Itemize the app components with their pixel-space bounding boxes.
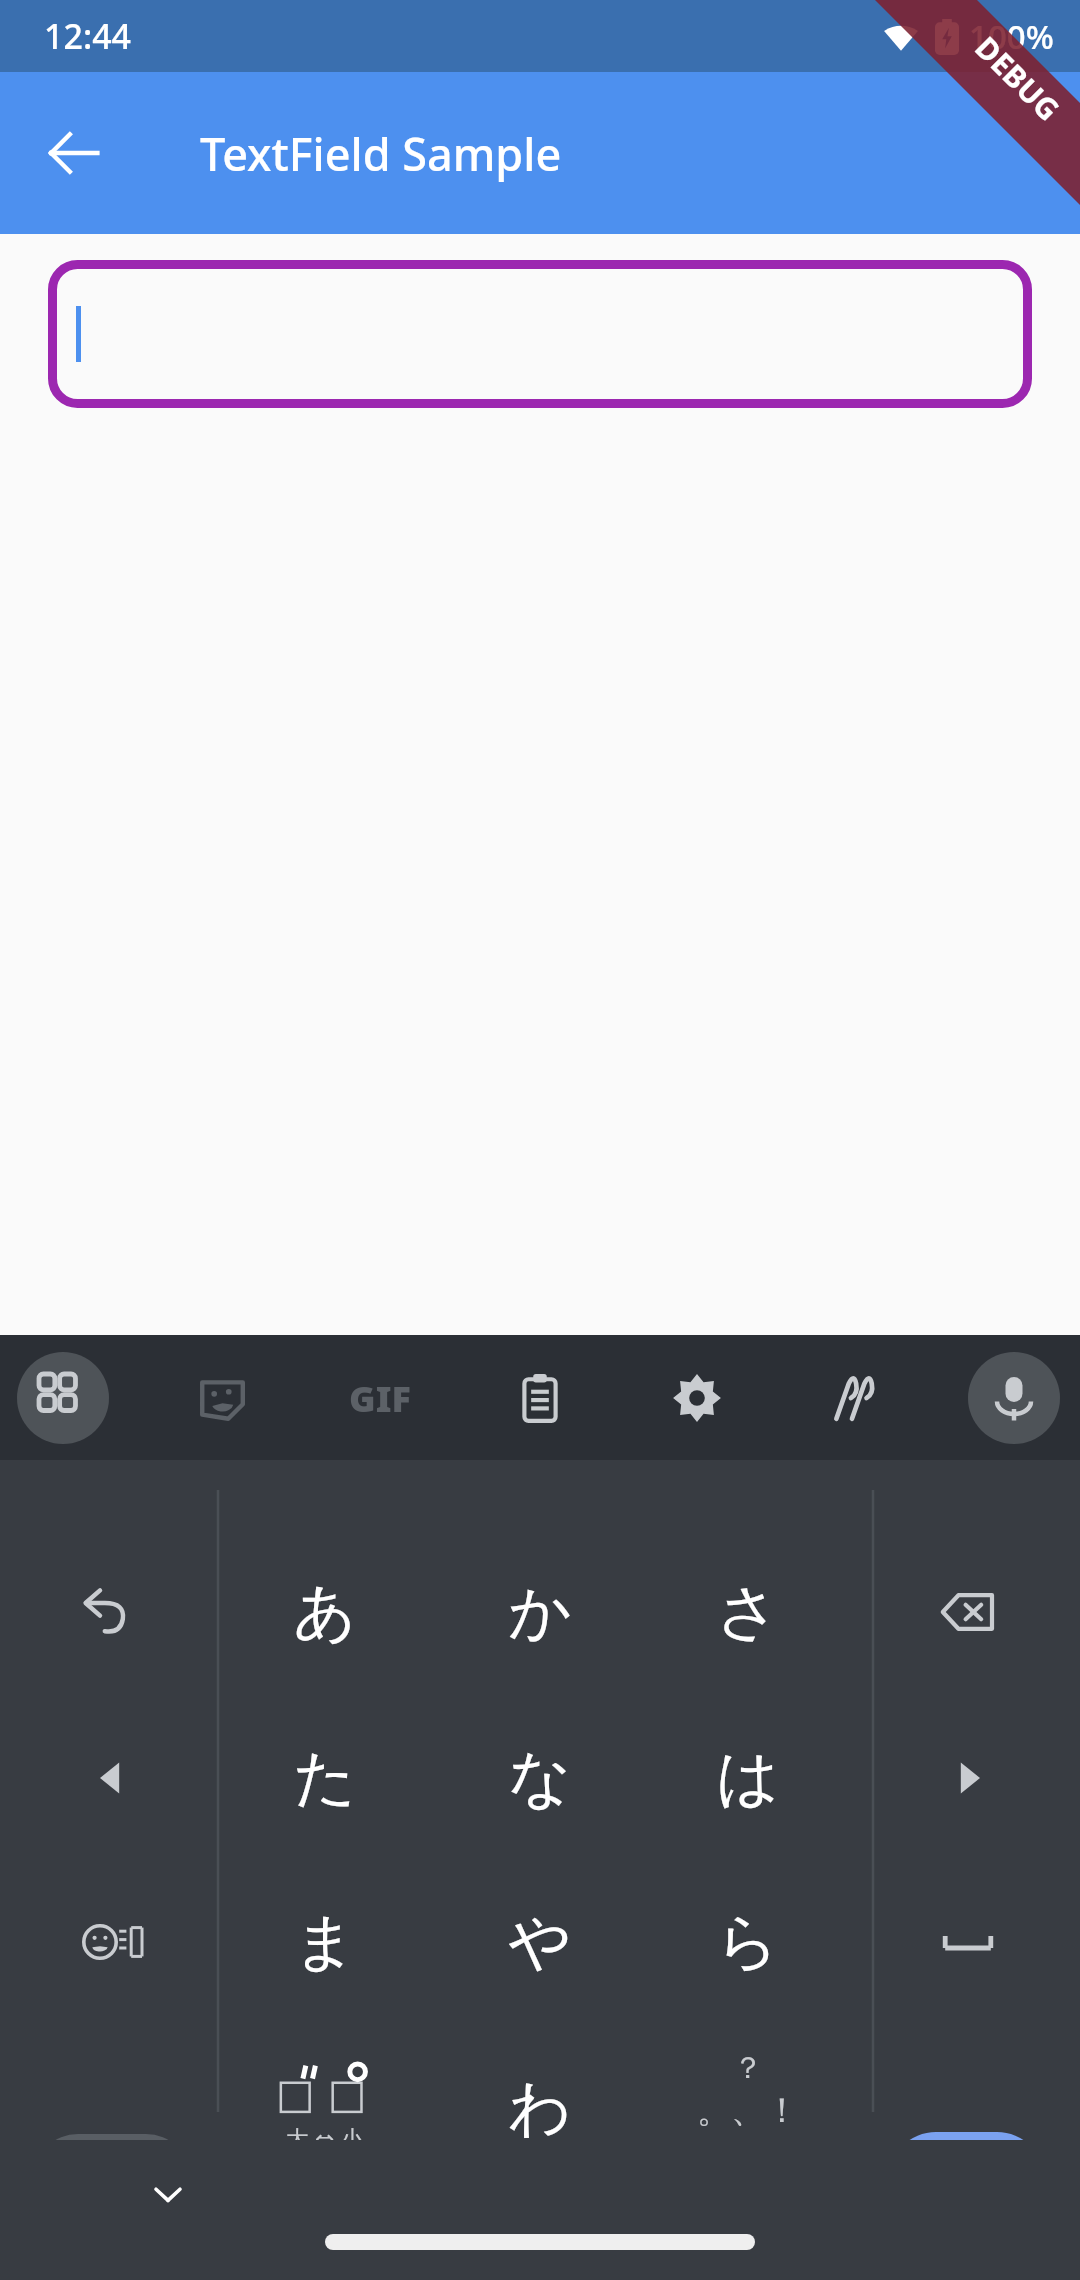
button[interactable]: Cursor right bbox=[883, 1698, 1053, 1858]
button[interactable]: か bbox=[450, 1532, 630, 1692]
button[interactable]: は bbox=[658, 1698, 838, 1858]
button[interactable]: あ bbox=[235, 1532, 415, 1692]
button[interactable]: Small kana / dakuten bbox=[235, 2028, 415, 2188]
button[interactable]: Symbols bbox=[27, 1862, 197, 2022]
staticText: ま bbox=[293, 1903, 357, 1981]
button[interactable]: な bbox=[450, 1698, 630, 1858]
staticText: ？ bbox=[733, 2049, 763, 2087]
button[interactable]: ら bbox=[658, 1862, 838, 2022]
staticText: a1 bbox=[110, 2148, 160, 2208]
button[interactable]: Backspace bbox=[883, 1532, 1053, 1692]
staticText: た bbox=[293, 1739, 357, 1817]
button[interactable]: Stickers bbox=[176, 1352, 268, 1444]
button[interactable]: GIF bbox=[334, 1352, 426, 1444]
button[interactable]: さ bbox=[658, 1532, 838, 1692]
button[interactable]: わ bbox=[450, 2028, 630, 2188]
staticText: さ bbox=[716, 1573, 780, 1651]
staticText: GIF bbox=[349, 1374, 411, 1423]
button[interactable]: あ bbox=[34, 2134, 190, 2222]
button[interactable]: Enter bbox=[888, 2132, 1045, 2231]
staticText: 100% bbox=[969, 14, 1054, 59]
staticText: か bbox=[508, 1573, 572, 1651]
button[interactable]: Undo bbox=[27, 1532, 197, 1692]
button[interactable]: Handwriting bbox=[807, 1352, 899, 1444]
staticText: 12:44 bbox=[44, 13, 132, 59]
button[interactable]: Clipboard bbox=[494, 1352, 586, 1444]
staticText: ら bbox=[716, 1903, 780, 1981]
staticText: わ bbox=[508, 2069, 572, 2147]
staticText: DEBUG bbox=[967, 27, 1069, 130]
button[interactable] bbox=[48, 260, 1032, 408]
staticText: TextField Sample bbox=[200, 123, 562, 184]
button[interactable]: Punctuation bbox=[658, 2028, 838, 2188]
staticText: 大 ⇔ 小 bbox=[286, 2122, 364, 2153]
button[interactable]: Hide keyboard bbox=[130, 2156, 206, 2232]
button[interactable]: Voice input bbox=[968, 1352, 1060, 1444]
staticText: 。、！ bbox=[697, 2089, 799, 2132]
button[interactable]: た bbox=[235, 1698, 415, 1858]
button[interactable]: Settings bbox=[651, 1352, 743, 1444]
staticText: は bbox=[716, 1739, 780, 1817]
staticText: な bbox=[508, 1739, 572, 1817]
button[interactable]: や bbox=[450, 1862, 630, 2022]
button[interactable]: ま bbox=[235, 1862, 415, 2022]
button[interactable]: Keyboard modes bbox=[17, 1352, 109, 1444]
button[interactable]: Space bbox=[883, 1862, 1053, 2022]
staticText: あ bbox=[293, 1573, 357, 1651]
button[interactable]: Cursor left bbox=[27, 1698, 197, 1858]
staticText: や bbox=[508, 1903, 572, 1981]
button[interactable]: Back bbox=[26, 105, 122, 201]
